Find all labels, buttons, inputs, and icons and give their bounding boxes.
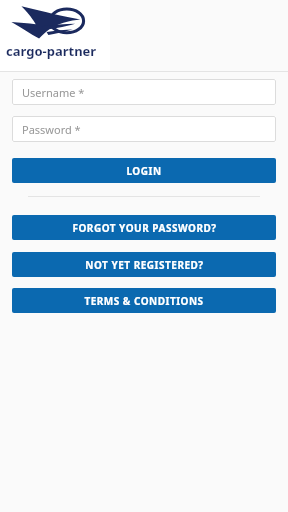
staticText: Username * [22, 85, 85, 100]
button[interactable]: Password * [12, 116, 276, 142]
button[interactable]: TERMS & CONDITIONS [12, 288, 276, 313]
button[interactable]: FORGOT YOUR PASSWORD? [12, 215, 276, 240]
button[interactable]: LOGIN [12, 158, 276, 183]
staticText: cargo-partner [6, 42, 97, 60]
staticText: TERMS & CONDITIONS [84, 294, 204, 308]
staticText: LOGIN [126, 164, 162, 178]
staticText: NOT YET REGISTERED? [85, 258, 204, 272]
staticText: Password * [22, 122, 81, 137]
button[interactable]: NOT YET REGISTERED? [12, 252, 276, 277]
button[interactable]: Username * [12, 79, 276, 105]
staticText: FORGOT YOUR PASSWORD? [72, 221, 217, 235]
